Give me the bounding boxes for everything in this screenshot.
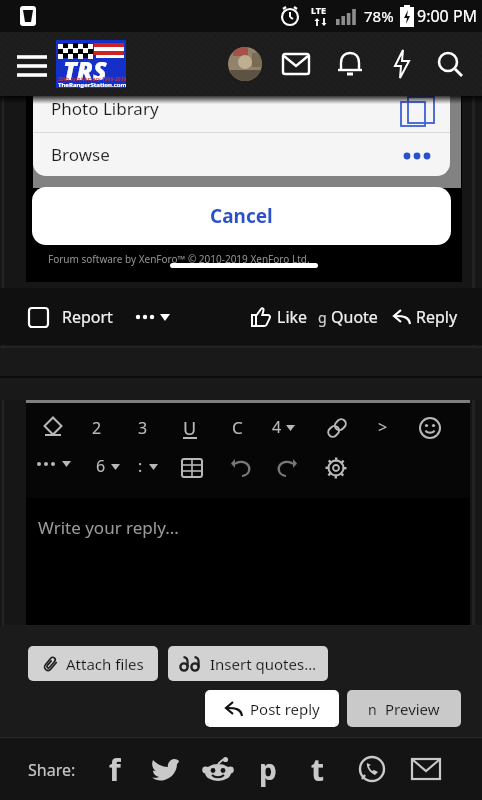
staticText: Photo Library [51,97,159,120]
staticText: Share: [28,759,76,781]
staticText: Report [62,306,113,328]
staticText: U [183,416,197,441]
staticText: LTE [311,4,327,16]
button[interactable]: n [347,690,461,727]
staticText: Reply [416,306,458,328]
button[interactable]: > [378,416,388,438]
button[interactable] [38,415,68,441]
staticText: t [311,749,325,789]
button[interactable]: TRS [56,40,126,88]
button[interactable] [36,458,71,470]
button[interactable]: : [138,455,158,477]
button[interactable] [384,46,420,82]
staticText: : [138,455,143,477]
staticText: n [368,700,377,719]
staticText: Like [277,306,308,328]
staticText: g [318,308,327,327]
staticText: Browse [51,143,110,166]
button[interactable]: C [232,416,243,439]
staticText: Quote [331,306,378,328]
button[interactable] [146,749,186,789]
staticText: 20th Anniversary 1999-2019 [58,76,126,83]
staticText: Attach files [66,654,144,674]
button[interactable]: f [98,749,132,789]
button[interactable] [406,749,446,789]
staticText: 9:00 PM [417,5,478,27]
button[interactable]: Attach files [28,646,158,681]
button[interactable]: 6 [96,455,120,477]
button[interactable] [272,455,302,481]
staticText: Forum software by XenForo™ © 2010-2019 X… [48,252,310,266]
button[interactable] [352,749,392,789]
button[interactable]: Report [62,302,113,332]
button[interactable] [26,305,50,329]
staticText: Write your reply... [38,516,179,539]
button[interactable]: p [250,749,286,789]
staticText: p [259,750,277,788]
button[interactable]: g [318,300,386,334]
button[interactable]: Reply [392,300,464,334]
button[interactable]: Post reply [205,690,339,727]
button[interactable] [416,414,444,442]
button[interactable]: t [300,749,336,789]
staticText: Cancel [210,203,273,229]
button[interactable]: U [176,413,204,443]
button[interactable] [10,48,54,84]
staticText: 6 [96,455,106,477]
button[interactable] [332,46,368,82]
button[interactable] [322,455,350,481]
staticText: 78% [364,6,394,26]
button[interactable]: Like [250,300,320,334]
staticText: 4 [272,416,282,438]
button[interactable]: Insert quotes… [168,646,328,681]
button[interactable]: 2 [92,417,102,439]
button[interactable]: Write your reply... [26,498,470,625]
button[interactable]: 3 [138,417,148,439]
button[interactable] [198,749,238,789]
button[interactable] [228,47,262,81]
button[interactable] [134,302,178,332]
button[interactable] [322,413,352,443]
button[interactable] [278,46,314,82]
staticText: f [109,749,121,789]
staticText: TRS [63,53,107,87]
staticText: TheRangerStation.com [58,81,126,88]
staticText: Post reply [250,699,320,719]
button[interactable] [178,455,206,481]
button[interactable]: Cancel [32,187,451,245]
button[interactable]: Photo Library [33,96,450,176]
button[interactable]: 4 [272,416,295,438]
staticText: Insert quotes… [210,654,317,674]
button[interactable] [432,46,468,82]
staticText: Preview [385,699,440,719]
button[interactable] [226,455,256,481]
